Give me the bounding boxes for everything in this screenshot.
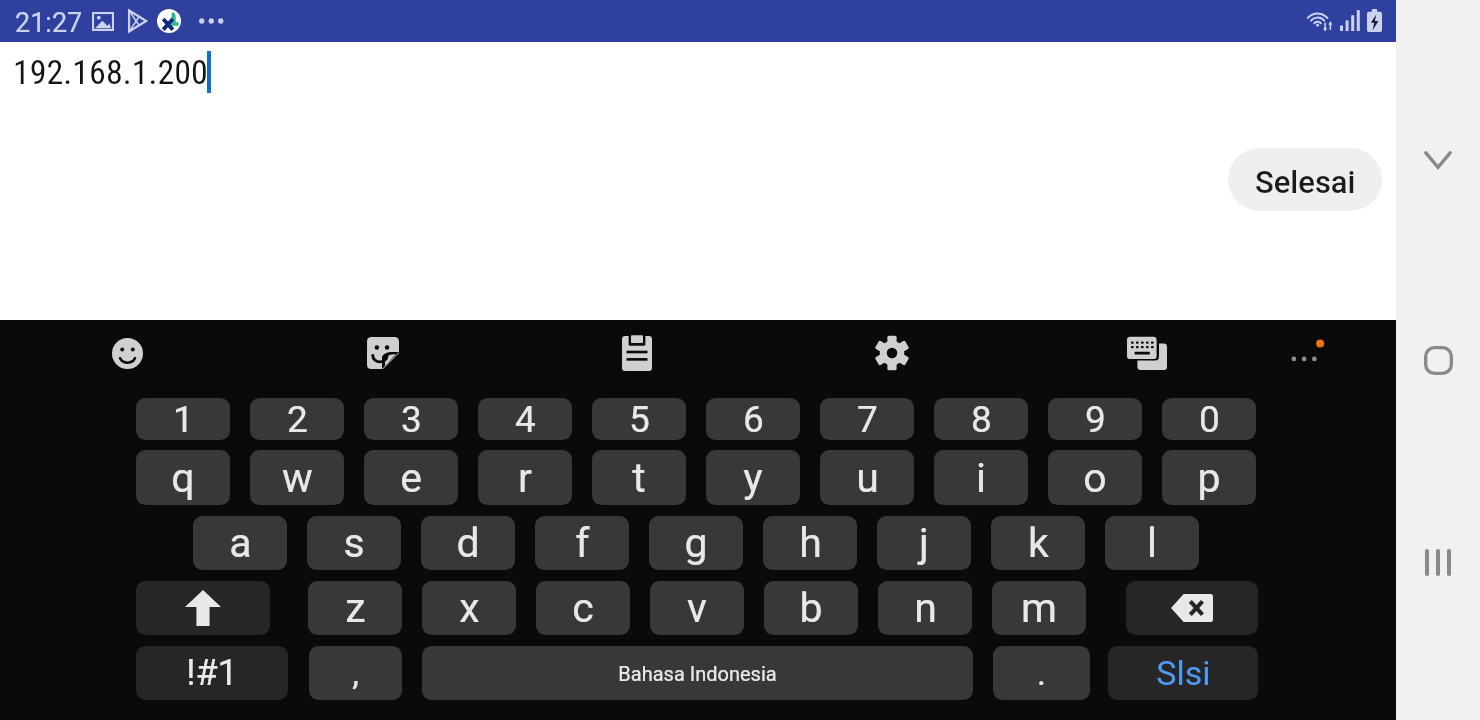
- button[interactable]: 1: [136, 398, 230, 440]
- button[interactable]: o: [1048, 450, 1142, 505]
- button[interactable]: t: [592, 450, 686, 505]
- staticText: o: [1083, 454, 1107, 502]
- staticText: w: [282, 454, 313, 502]
- staticText: Slsi: [1156, 653, 1211, 693]
- button[interactable]: x: [422, 581, 516, 635]
- button[interactable]: h: [763, 516, 857, 570]
- staticText: n: [914, 584, 937, 632]
- staticText: 6: [743, 398, 764, 440]
- button[interactable]: 6: [706, 398, 800, 440]
- button[interactable]: 2: [250, 398, 344, 440]
- staticText: p: [1197, 454, 1221, 502]
- button[interactable]: k: [991, 516, 1085, 570]
- button[interactable]: 5: [592, 398, 686, 440]
- staticText: m: [1021, 584, 1057, 632]
- button[interactable]: f: [535, 516, 629, 570]
- staticText: r: [518, 454, 532, 502]
- staticText: 21:27: [15, 7, 83, 39]
- staticText: Selesai: [1255, 164, 1356, 200]
- staticText: z: [345, 584, 366, 632]
- button[interactable]: q: [136, 450, 230, 505]
- staticText: s: [343, 519, 365, 567]
- staticText: e: [400, 454, 422, 502]
- staticText: 192.168.1.200: [13, 52, 208, 92]
- button[interactable]: Bahasa Indonesia: [422, 646, 973, 700]
- button[interactable]: Emoji: [99, 325, 155, 381]
- button[interactable]: 7: [820, 398, 914, 440]
- staticText: 3: [401, 398, 422, 440]
- staticText: y: [743, 454, 763, 502]
- button[interactable]: b: [764, 581, 858, 635]
- staticText: 7: [857, 398, 878, 440]
- button[interactable]: w: [250, 450, 344, 505]
- staticText: 9: [1085, 398, 1106, 440]
- staticText: l: [1147, 519, 1157, 567]
- button[interactable]: !#1: [136, 646, 288, 700]
- staticText: c: [572, 584, 594, 632]
- button[interactable]: u: [820, 450, 914, 505]
- button[interactable]: Clipboard: [609, 325, 665, 381]
- staticText: 4: [515, 398, 536, 440]
- button[interactable]: 4: [478, 398, 572, 440]
- button[interactable]: Settings: [864, 325, 920, 381]
- staticText: k: [1028, 519, 1049, 567]
- button[interactable]: j: [877, 516, 971, 570]
- staticText: .: [1037, 653, 1046, 693]
- button[interactable]: Stickers: [355, 325, 411, 381]
- button[interactable]: d: [421, 516, 515, 570]
- button[interactable]: .: [993, 646, 1090, 700]
- staticText: 1: [173, 398, 194, 440]
- staticText: 5: [629, 398, 650, 440]
- button[interactable]: e: [364, 450, 458, 505]
- staticText: b: [799, 584, 823, 632]
- button[interactable]: s: [307, 516, 401, 570]
- staticText: d: [456, 519, 480, 567]
- button[interactable]: 0: [1162, 398, 1256, 440]
- staticText: 8: [971, 398, 992, 440]
- staticText: Bahasa Indonesia: [618, 662, 777, 685]
- staticText: q: [171, 454, 195, 502]
- button[interactable]: n: [878, 581, 972, 635]
- button[interactable]: Switch keyboard: [1119, 325, 1175, 381]
- staticText: u: [856, 454, 879, 502]
- button[interactable]: r: [478, 450, 572, 505]
- button[interactable]: p: [1162, 450, 1256, 505]
- button[interactable]: y: [706, 450, 800, 505]
- button[interactable]: l: [1105, 516, 1199, 570]
- staticText: t: [632, 454, 646, 502]
- button[interactable]: 192.168.1.200: [0, 42, 1396, 102]
- button[interactable]: Recent apps: [1406, 530, 1470, 594]
- staticText: x: [459, 584, 480, 632]
- staticText: g: [684, 519, 708, 567]
- button[interactable]: ,: [309, 646, 402, 700]
- staticText: h: [799, 519, 822, 567]
- button[interactable]: Hide keyboard: [1406, 128, 1470, 192]
- button[interactable]: i: [934, 450, 1028, 505]
- button[interactable]: Backspace: [1126, 581, 1258, 635]
- staticText: ,: [352, 653, 359, 693]
- button[interactable]: Shift: [136, 581, 270, 635]
- button[interactable]: a: [193, 516, 287, 570]
- button[interactable]: 9: [1048, 398, 1142, 440]
- staticText: !#1: [186, 652, 238, 694]
- button[interactable]: c: [536, 581, 630, 635]
- staticText: a: [229, 519, 252, 567]
- staticText: f: [575, 519, 590, 567]
- staticText: i: [976, 454, 986, 502]
- staticText: v: [687, 584, 707, 632]
- button[interactable]: 3: [364, 398, 458, 440]
- staticText: 2: [287, 398, 308, 440]
- button[interactable]: v: [650, 581, 744, 635]
- button[interactable]: z: [308, 581, 402, 635]
- button[interactable]: g: [649, 516, 743, 570]
- button[interactable]: More options: [1279, 325, 1335, 381]
- button[interactable]: m: [992, 581, 1086, 635]
- button[interactable]: Selesai: [1228, 148, 1382, 211]
- button[interactable]: Home: [1406, 328, 1470, 392]
- button[interactable]: 8: [934, 398, 1028, 440]
- staticText: j: [919, 519, 929, 567]
- button[interactable]: Slsi: [1108, 646, 1258, 700]
- staticText: 0: [1199, 398, 1220, 440]
